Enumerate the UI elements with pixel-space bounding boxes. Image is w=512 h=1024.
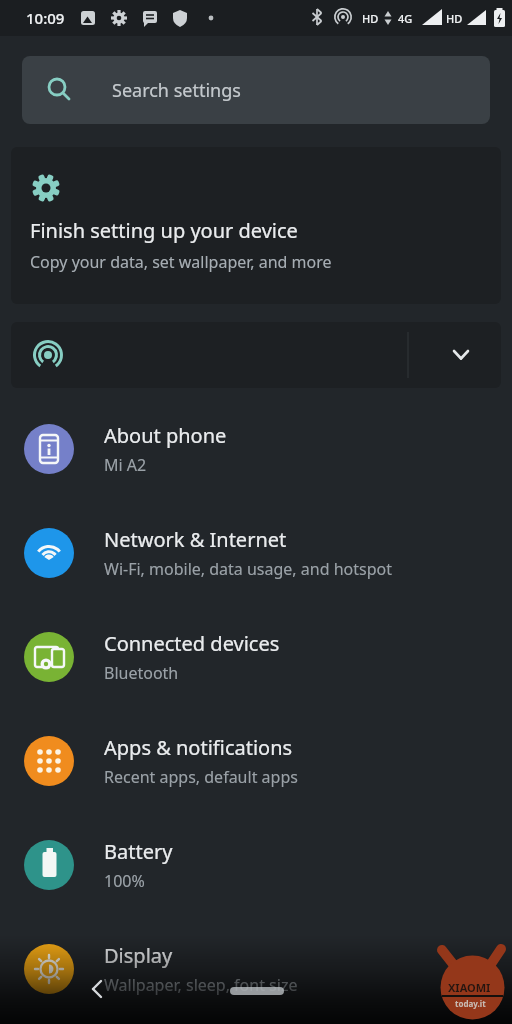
button[interactable] [11,322,501,388]
staticText: Search settings [112,78,241,103]
staticText: Recent apps, default apps [104,766,298,788]
staticText: Wallpaper, sleep, font size [104,974,298,996]
staticText: Connected devices [104,630,280,657]
button[interactable]: About phone [0,397,512,501]
button[interactable]: Search settings [22,56,490,124]
button[interactable]: Battery [0,813,512,917]
staticText: 10:09 [26,8,65,28]
staticText: Copy your data, set wallpaper, and more [30,251,332,273]
staticText: Network & Internet [104,526,287,553]
staticText: Wi-Fi, mobile, data usage, and hotspot [104,558,392,580]
button[interactable]: Display [0,917,512,1021]
staticText: Apps & notifications [104,734,293,761]
staticText: Finish setting up your device [30,217,298,244]
staticText: Display [104,942,173,969]
staticText: HD [446,11,463,26]
button[interactable]: Network & Internet [0,501,512,605]
staticText: 4G [398,11,413,26]
staticText: Battery [104,838,173,865]
staticText: Bluetooth [104,662,179,684]
staticText: Mi A2 [104,454,147,476]
button[interactable]: Apps & notifications [0,709,512,813]
button[interactable]: Connected devices [0,605,512,709]
staticText: 100% [104,870,145,892]
staticText: About phone [104,422,227,449]
button[interactable]: Finish setting up your device [11,147,501,304]
staticText: XIAOMI [448,980,491,995]
staticText: today.it [455,998,486,1009]
staticText: HD [362,11,379,26]
